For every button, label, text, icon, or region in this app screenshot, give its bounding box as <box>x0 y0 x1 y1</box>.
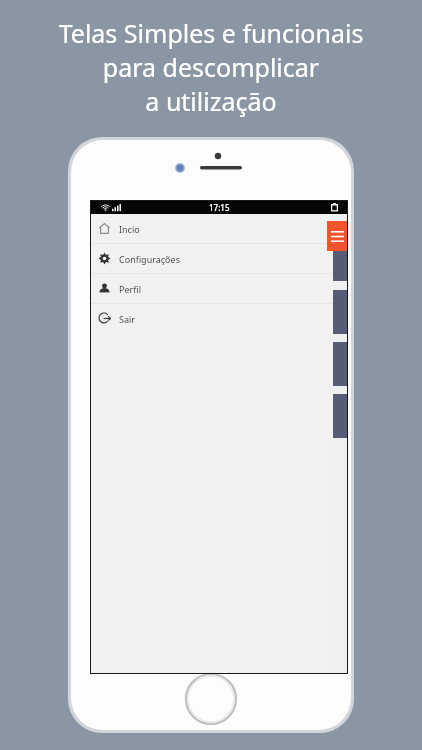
button[interactable]: Perfil <box>91 274 333 303</box>
staticText: Telas Simples e funcionais <box>0 16 422 50</box>
staticText: Perfil <box>119 283 141 295</box>
staticText: Configurações <box>119 253 180 265</box>
staticText: a utilização <box>0 84 422 118</box>
staticText: 17:15 <box>209 202 230 213</box>
button[interactable]: Sair <box>91 304 333 333</box>
staticText: Sair <box>119 313 136 325</box>
button[interactable]: Configurações <box>91 244 333 273</box>
staticText: Incio <box>119 223 140 235</box>
button[interactable]: Incio <box>91 214 333 243</box>
staticText: para descomplicar <box>0 50 422 84</box>
button[interactable]: Abrir menu <box>327 221 347 251</box>
